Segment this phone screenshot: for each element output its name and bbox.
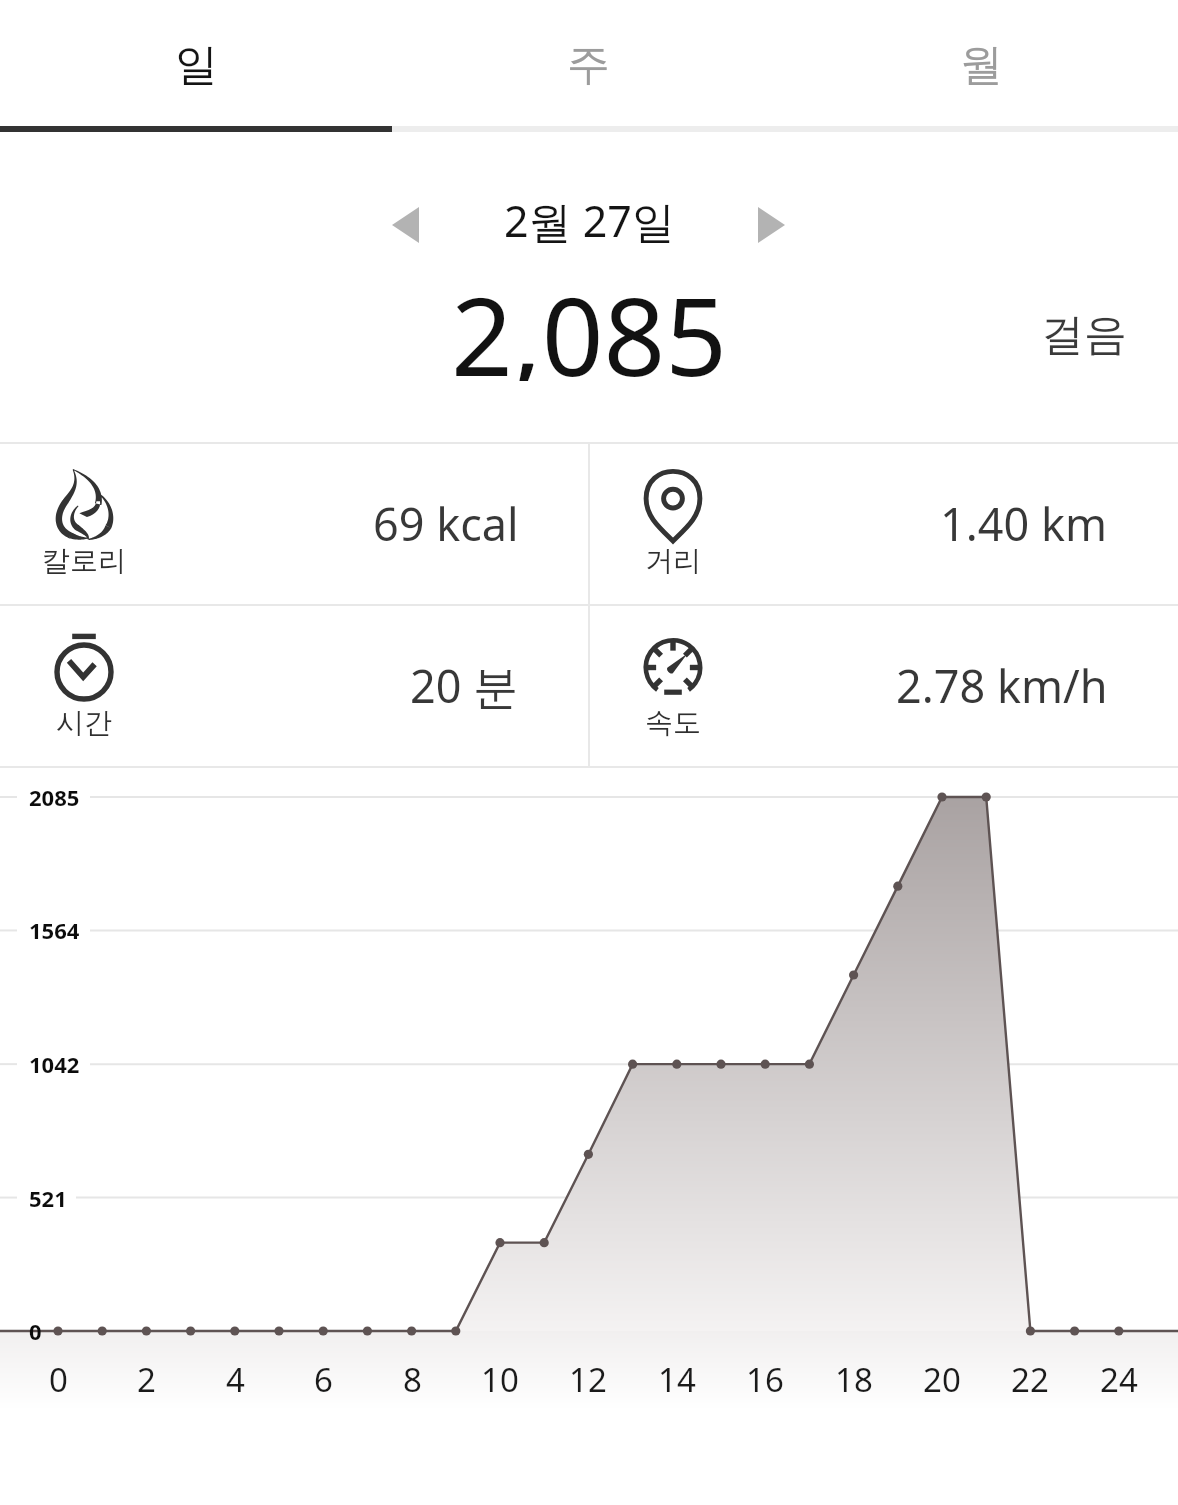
staticText: 2 <box>137 1357 156 1399</box>
staticText: 521 <box>29 1183 67 1213</box>
staticText: 2085 <box>29 782 80 812</box>
staticText: 10 <box>481 1357 519 1399</box>
staticText: 월 <box>960 38 1003 92</box>
staticText: 6 <box>314 1357 333 1399</box>
staticText: 24 <box>1100 1357 1138 1399</box>
staticText: 22 <box>1011 1357 1049 1399</box>
button[interactable]: Previous day <box>369 189 441 261</box>
staticText: 시간 <box>56 705 112 740</box>
button[interactable]: 월 <box>785 0 1178 126</box>
button[interactable]: 속도 <box>589 604 1178 766</box>
staticText: 4 <box>226 1357 245 1399</box>
button[interactable]: 거리 <box>589 442 1178 604</box>
staticText: 14 <box>658 1357 696 1399</box>
staticText: 2,085 <box>451 261 728 381</box>
staticText: 69 kcal <box>373 493 519 554</box>
staticText: 0 <box>29 1316 42 1346</box>
staticText: 2월 27일 <box>504 191 675 250</box>
staticText: 걸음 <box>1041 308 1127 362</box>
staticText: 18 <box>835 1357 873 1399</box>
staticText: 1042 <box>29 1049 80 1079</box>
button[interactable]: 시간 <box>0 604 589 766</box>
staticText: 1564 <box>29 915 80 945</box>
staticText: 거리 <box>645 543 701 578</box>
staticText: 12 <box>569 1357 607 1399</box>
staticText: 일 <box>175 38 218 92</box>
staticText: 주 <box>567 38 610 92</box>
button[interactable]: 칼로리 <box>0 442 589 604</box>
staticText: 1.40 km <box>940 493 1108 554</box>
staticText: 0 <box>49 1357 68 1399</box>
button[interactable]: Next day <box>735 189 807 261</box>
staticText: 20 <box>923 1357 961 1399</box>
staticText: 속도 <box>645 705 701 740</box>
staticText: 20 분 <box>410 655 519 716</box>
staticText: 16 <box>746 1357 784 1399</box>
staticText: 2.78 km/h <box>896 655 1108 716</box>
staticText: 칼로리 <box>42 543 126 578</box>
staticText: 8 <box>403 1357 422 1399</box>
button[interactable]: 일 <box>0 0 392 126</box>
button[interactable]: 주 <box>392 0 785 126</box>
